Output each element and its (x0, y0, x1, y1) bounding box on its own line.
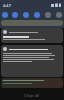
button[interactable]: Auto rotate (45, 12, 51, 18)
button[interactable] (1, 78, 63, 88)
button[interactable]: Battery saver (56, 12, 62, 18)
button[interactable] (1, 45, 63, 77)
staticText: Clear all (24, 93, 40, 98)
button[interactable]: Bluetooth (12, 12, 18, 18)
button[interactable] (1, 28, 63, 43)
button[interactable]: Brightness (1, 20, 63, 26)
button[interactable]: Internet (2, 12, 8, 18)
button[interactable]: Clear all (21, 92, 43, 99)
staticText: 4:47 (3, 3, 11, 8)
button[interactable]: Do not disturb (23, 12, 29, 18)
button[interactable]: Flashlight (34, 12, 40, 18)
